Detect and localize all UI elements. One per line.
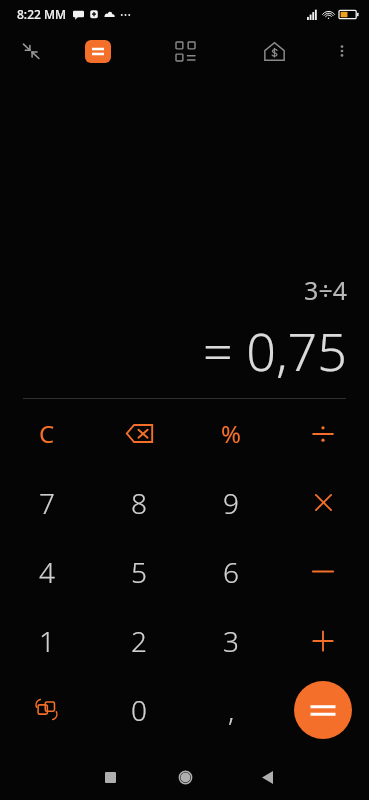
button[interactable]: Convert (0, 675, 93, 744)
button[interactable]: 5 (93, 537, 185, 606)
button[interactable]: Collapse (13, 33, 49, 69)
button[interactable]: Back (247, 757, 287, 797)
button[interactable]: 7 (0, 468, 93, 537)
button[interactable]: Minus (277, 537, 369, 606)
staticText: C (39, 417, 55, 450)
button[interactable]: Clear (0, 399, 93, 468)
button[interactable]: Equals (294, 681, 352, 739)
button[interactable]: 0 (93, 675, 185, 744)
button[interactable]: 2 (93, 606, 185, 675)
staticText: % (221, 417, 241, 450)
button[interactable]: Converter (167, 33, 203, 69)
staticText: 3÷4 (304, 273, 347, 307)
staticText: 2 (131, 622, 147, 660)
button[interactable]: Plus (277, 606, 369, 675)
staticText: 5 (131, 553, 147, 591)
staticText: 9 (223, 484, 239, 522)
staticText: 6 (223, 553, 239, 591)
staticText: 1 (39, 622, 55, 660)
staticText: , (228, 691, 235, 729)
button[interactable]: Multiply (277, 468, 369, 537)
staticText: 0 (131, 691, 147, 729)
staticText: 3 (223, 622, 239, 660)
button[interactable]: Home (165, 757, 205, 797)
button[interactable]: Calculator (85, 40, 111, 63)
button[interactable]: 1 (0, 606, 93, 675)
button[interactable]: 3 (185, 606, 277, 675)
button[interactable]: Divide (277, 399, 369, 468)
staticText: 8:22 MM (17, 6, 67, 22)
button[interactable]: 9 (185, 468, 277, 537)
button[interactable]: 4 (0, 537, 93, 606)
button[interactable]: Backspace (93, 399, 185, 468)
staticText: = 0,75 (203, 315, 347, 386)
button[interactable]: Percent (185, 399, 277, 468)
staticText: 8 (131, 484, 147, 522)
button[interactable]: More options (324, 33, 360, 69)
staticText: 4 (39, 553, 55, 591)
button[interactable]: 8 (93, 468, 185, 537)
button[interactable]: Loan (256, 33, 292, 69)
button[interactable]: 6 (185, 537, 277, 606)
staticText: 7 (39, 484, 55, 522)
button[interactable]: , (185, 675, 277, 744)
button[interactable]: Recents (90, 757, 130, 797)
